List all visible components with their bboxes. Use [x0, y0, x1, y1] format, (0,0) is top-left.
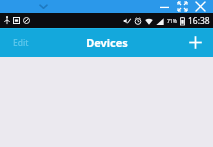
button[interactable]: Minimize [155, 0, 173, 13]
button[interactable]: Maximize [173, 0, 191, 13]
staticText: Devices [86, 35, 128, 50]
staticText: Edit [13, 37, 29, 49]
button[interactable]: Edit [0, 28, 42, 57]
staticText: 16:38 [188, 15, 210, 27]
button[interactable]: Close [191, 0, 209, 13]
button[interactable]: Add device [177, 28, 213, 57]
button[interactable]: Expand [38, 1, 49, 12]
staticText: 71% [167, 18, 177, 25]
